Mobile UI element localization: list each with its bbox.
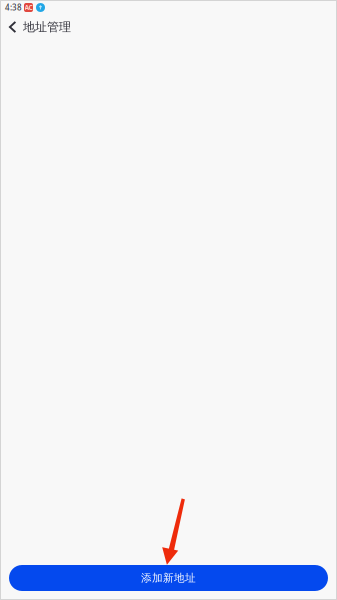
- staticText: 添加新地址: [141, 571, 196, 584]
- button[interactable]: 添加新地址: [9, 565, 328, 591]
- staticText: 4:38: [5, 2, 22, 13]
- button[interactable]: 地址管理: [0, 15, 81, 39]
- staticText: AC: [24, 3, 32, 12]
- staticText: 地址管理: [23, 20, 71, 34]
